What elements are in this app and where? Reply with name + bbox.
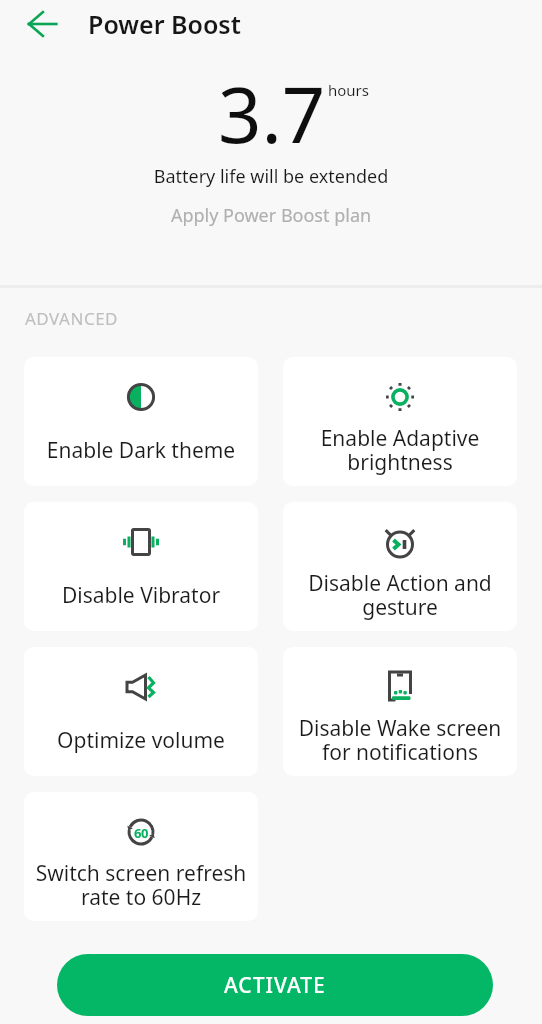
staticText: Disable Wake screen for notifications bbox=[283, 714, 517, 767]
button[interactable]: Optimize volume bbox=[24, 647, 258, 776]
staticText: Disable Action and gesture bbox=[283, 569, 517, 622]
staticText: Battery life will be extended bbox=[0, 164, 542, 189]
staticText: Power Boost bbox=[88, 7, 241, 41]
staticText: 3.7 bbox=[218, 62, 326, 166]
button[interactable]: Disable Wake screen for notifications bbox=[283, 647, 517, 776]
button[interactable]: Enable Adaptive brightness bbox=[283, 357, 517, 486]
button[interactable]: Disable Vibrator bbox=[24, 502, 258, 631]
button[interactable]: ACTIVATE bbox=[57, 954, 493, 1016]
staticText: ADVANCED bbox=[25, 307, 119, 330]
staticText: Switch screen refresh rate to 60Hz bbox=[24, 859, 258, 912]
button[interactable]: 60 bbox=[24, 792, 258, 921]
button[interactable]: Disable Action and gesture bbox=[283, 502, 517, 631]
button[interactable]: Back bbox=[18, 0, 66, 48]
staticText: Apply Power Boost plan bbox=[0, 203, 542, 228]
staticText: ACTIVATE bbox=[224, 971, 326, 1000]
button[interactable]: Enable Dark theme bbox=[24, 357, 258, 486]
staticText: hours bbox=[328, 80, 369, 100]
staticText: Enable Adaptive brightness bbox=[283, 424, 517, 477]
staticText: Enable Dark theme bbox=[24, 436, 258, 465]
staticText: 60 bbox=[134, 824, 148, 842]
staticText: Optimize volume bbox=[24, 726, 258, 755]
staticText: Disable Vibrator bbox=[24, 581, 258, 610]
